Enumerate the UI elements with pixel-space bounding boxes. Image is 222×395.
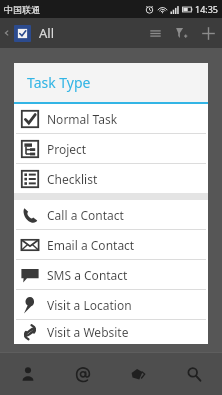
staticText: All (39, 24, 55, 42)
button[interactable]: List icon (14, 25, 31, 42)
button[interactable]: Email a Contact (14, 230, 208, 259)
button[interactable]: Back (0, 18, 14, 48)
button[interactable]: Visit a Location (14, 290, 208, 319)
staticText: Normal Task (47, 111, 118, 127)
button[interactable]: Tags (110, 352, 166, 395)
staticText: Checklist (47, 171, 98, 187)
button[interactable]: Add (194, 18, 222, 48)
button[interactable]: Normal Task (14, 104, 208, 133)
staticText: Call a Contact (47, 207, 124, 223)
staticText: Visit a Location (47, 297, 132, 313)
staticText: Email a Contact (47, 237, 135, 253)
staticText: Task Type (27, 73, 91, 92)
button[interactable]: Add filter (168, 18, 194, 48)
button[interactable]: Contacts (0, 352, 55, 395)
staticText: 中国联通 (4, 4, 40, 15)
button[interactable]: SMS a Contact (14, 260, 208, 289)
staticText: SMS a Contact (47, 267, 128, 283)
button[interactable]: Sort (142, 18, 168, 48)
button[interactable]: Search (166, 352, 222, 395)
staticText: 14:35 (195, 3, 219, 15)
button[interactable]: Checklist (14, 164, 208, 193)
staticText: Visit a Website (47, 324, 129, 340)
button[interactable]: Project (14, 134, 208, 163)
staticText: Project (47, 141, 87, 157)
button[interactable]: Call a Contact (14, 200, 208, 229)
button[interactable]: Email (55, 352, 110, 395)
button[interactable]: Visit a Website (14, 320, 208, 344)
